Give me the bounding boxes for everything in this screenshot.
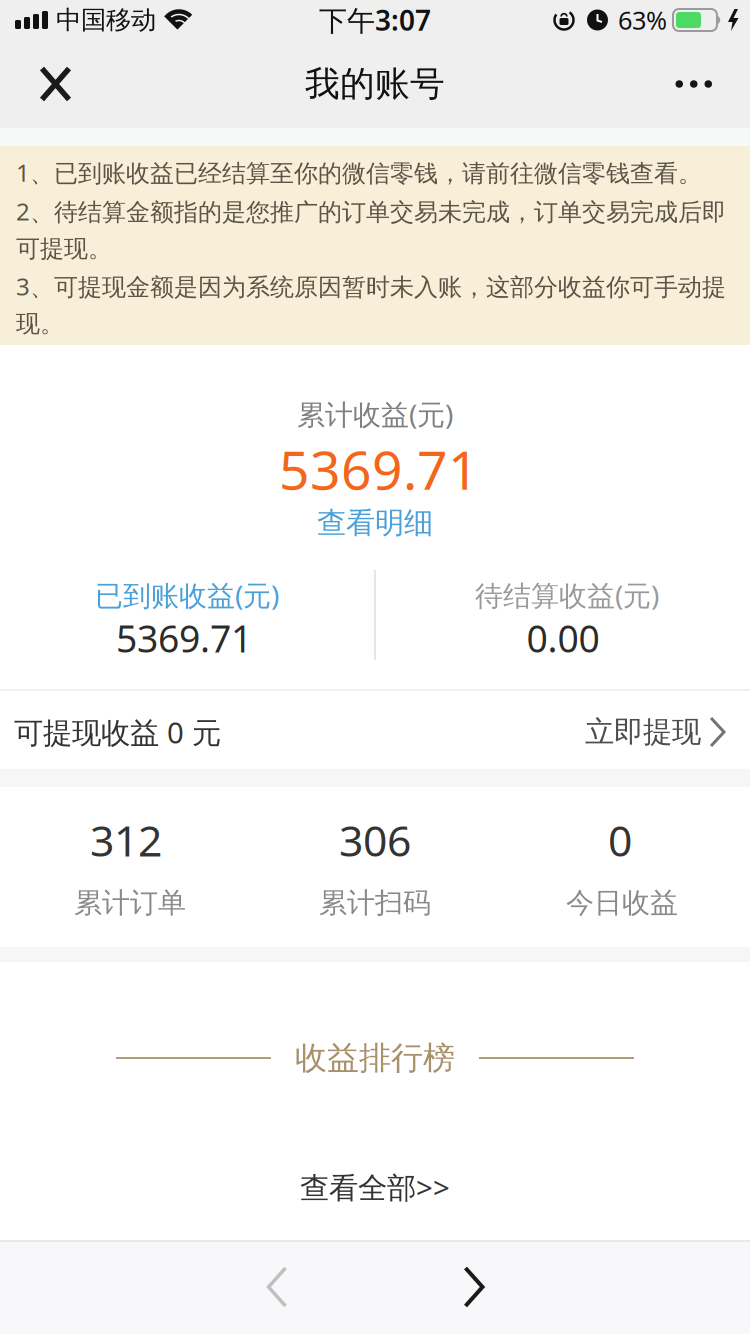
staticText: 我的账号 <box>305 63 445 105</box>
staticText: 306 <box>339 812 411 868</box>
staticText: 立即提现 <box>585 714 701 750</box>
staticText: 5369.71 <box>279 434 479 504</box>
staticText: 累计订单 <box>74 886 186 920</box>
staticText: 累计收益(元) <box>297 395 453 433</box>
staticText: 3、可提现金额是因为系统原因暂时未入账，这部分收益你可手动提 <box>16 270 726 302</box>
staticText: 收益排行榜 <box>295 1038 455 1078</box>
button[interactable]: 关闭 <box>0 40 89 127</box>
button[interactable]: 查看明细 <box>317 505 433 541</box>
staticText: 待结算收益(元) <box>475 576 659 614</box>
button[interactable]: 更多 <box>655 42 750 126</box>
button[interactable]: 上一页 <box>248 1248 305 1326</box>
staticText: 312 <box>90 812 162 868</box>
staticText: 下午3:07 <box>319 1 431 39</box>
staticText: 1、已到账收益已经结算至你的微信零钱，请前往微信零钱查看。 <box>16 157 702 188</box>
staticText: 现。 <box>16 309 64 338</box>
staticText: 已到账收益(元) <box>95 576 279 614</box>
staticText: 0 <box>608 812 632 868</box>
staticText: 可提现。 <box>16 234 112 263</box>
staticText: 63% <box>618 3 667 37</box>
button[interactable]: 可提现收益 0 元 <box>0 691 750 769</box>
staticText: 2、待结算金额指的是您推广的订单交易未完成，订单交易完成后即 <box>16 195 726 227</box>
button[interactable]: 下一页 <box>445 1248 502 1326</box>
staticText: 可提现收益 0 元 <box>14 712 221 751</box>
staticText: 累计扫码 <box>319 886 431 920</box>
staticText: 查看全部>> <box>300 1167 450 1206</box>
staticText: 中国移动 <box>56 4 156 35</box>
staticText: 5369.71 <box>116 613 252 663</box>
staticText: 查看明细 <box>317 505 433 541</box>
staticText: 今日收益 <box>566 886 678 920</box>
button[interactable]: 查看全部>> <box>300 1167 450 1206</box>
staticText: 0.00 <box>526 613 599 663</box>
